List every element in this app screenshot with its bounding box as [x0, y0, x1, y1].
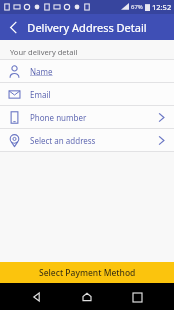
button[interactable]: Back — [24, 284, 50, 310]
staticText: Your delivery detail — [10, 47, 78, 57]
staticText: Select an address — [30, 135, 96, 146]
staticText: 67% — [131, 3, 143, 11]
staticText: Name — [30, 66, 53, 77]
staticText: Phone number — [30, 112, 87, 123]
staticText: Email — [30, 89, 51, 100]
button[interactable]: Recent apps — [124, 284, 150, 310]
button[interactable]: Home — [74, 284, 100, 310]
button[interactable]: Name — [0, 60, 174, 82]
staticText: Select Payment Method — [39, 267, 136, 279]
staticText: 12:52 — [152, 2, 172, 12]
button[interactable]: Phone number — [0, 106, 174, 128]
button[interactable]: Select an address — [0, 129, 174, 151]
button[interactable]: Back — [0, 14, 26, 40]
button[interactable]: Select Payment Method — [0, 262, 174, 283]
button[interactable]: Email — [0, 83, 174, 105]
staticText: Delivery Address Detail — [27, 20, 147, 35]
